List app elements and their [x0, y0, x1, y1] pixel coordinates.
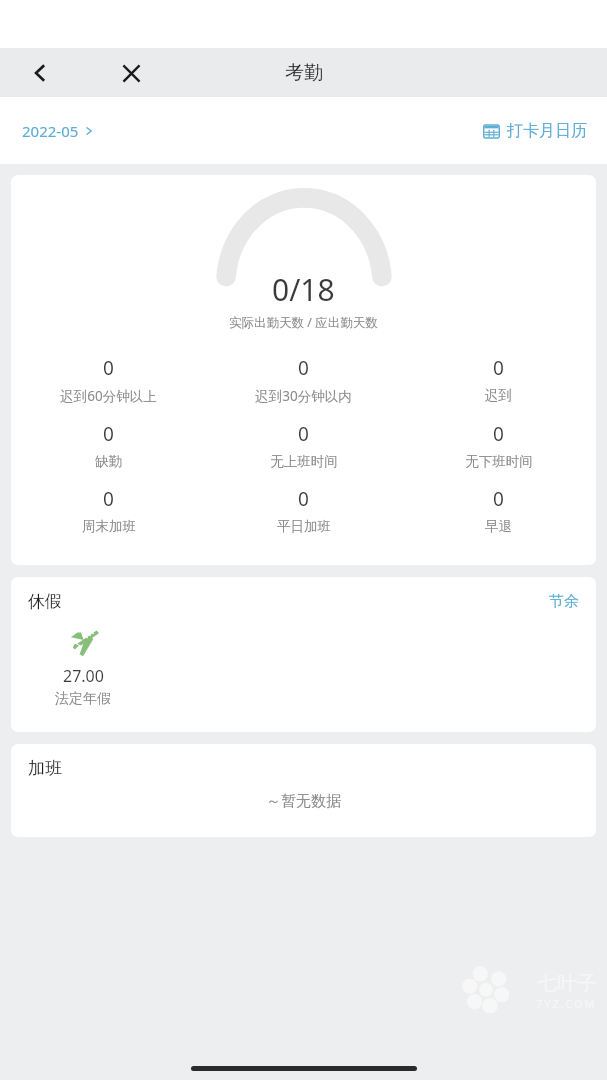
button[interactable]: 0	[206, 413, 401, 478]
staticText: 缺勤	[95, 453, 122, 470]
staticText: 0	[103, 355, 114, 381]
button[interactable]: 0	[401, 347, 596, 412]
button[interactable]: 0	[11, 347, 206, 413]
staticText: 迟到	[485, 387, 512, 404]
staticText: 打卡月日历	[507, 121, 587, 141]
button[interactable]: 0	[11, 413, 206, 478]
staticText: 0/18	[272, 269, 335, 310]
staticText: 0	[493, 355, 504, 381]
staticText: 平日加班	[277, 518, 331, 535]
staticText: 实际出勤天数 / 应出勤天数	[229, 314, 378, 331]
button[interactable]: 0	[11, 478, 206, 543]
staticText: 27.00	[63, 665, 104, 687]
staticText: 节余	[549, 592, 579, 611]
staticText: 0	[493, 421, 504, 447]
staticText: 法定年假	[55, 690, 111, 708]
staticText: 休假	[28, 591, 62, 612]
staticText: 0	[298, 355, 309, 381]
staticText: 无上班时间	[270, 453, 338, 470]
button[interactable]: 0	[206, 478, 401, 543]
staticText: 无下班时间	[465, 453, 533, 470]
staticText: 0	[298, 486, 309, 512]
staticText: 0	[298, 421, 309, 447]
staticText: 迟到30分钟以内	[255, 387, 352, 405]
button[interactable]: 27.00	[28, 625, 138, 708]
button[interactable]: 0	[206, 347, 401, 413]
staticText: 早退	[485, 518, 512, 535]
staticText: 加班	[28, 758, 62, 779]
button[interactable]: 0	[401, 413, 596, 478]
button[interactable]: Close	[109, 51, 153, 95]
staticText: 2022-05	[22, 121, 79, 141]
staticText: 0	[103, 486, 114, 512]
button[interactable]: 0	[401, 478, 596, 543]
button[interactable]: 打卡月日历	[477, 115, 593, 147]
staticText: 迟到60分钟以上	[60, 387, 157, 405]
staticText: ～暂无数据	[266, 792, 341, 811]
staticText: 0	[493, 486, 504, 512]
staticText: 0	[103, 421, 114, 447]
button[interactable]: Back	[18, 51, 62, 95]
staticText: 七叶子	[537, 971, 597, 996]
button[interactable]: 2022-05	[16, 115, 100, 147]
staticText: 考勤	[285, 61, 323, 85]
staticText: 周末加班	[82, 518, 136, 535]
button[interactable]: 节余	[532, 584, 596, 619]
